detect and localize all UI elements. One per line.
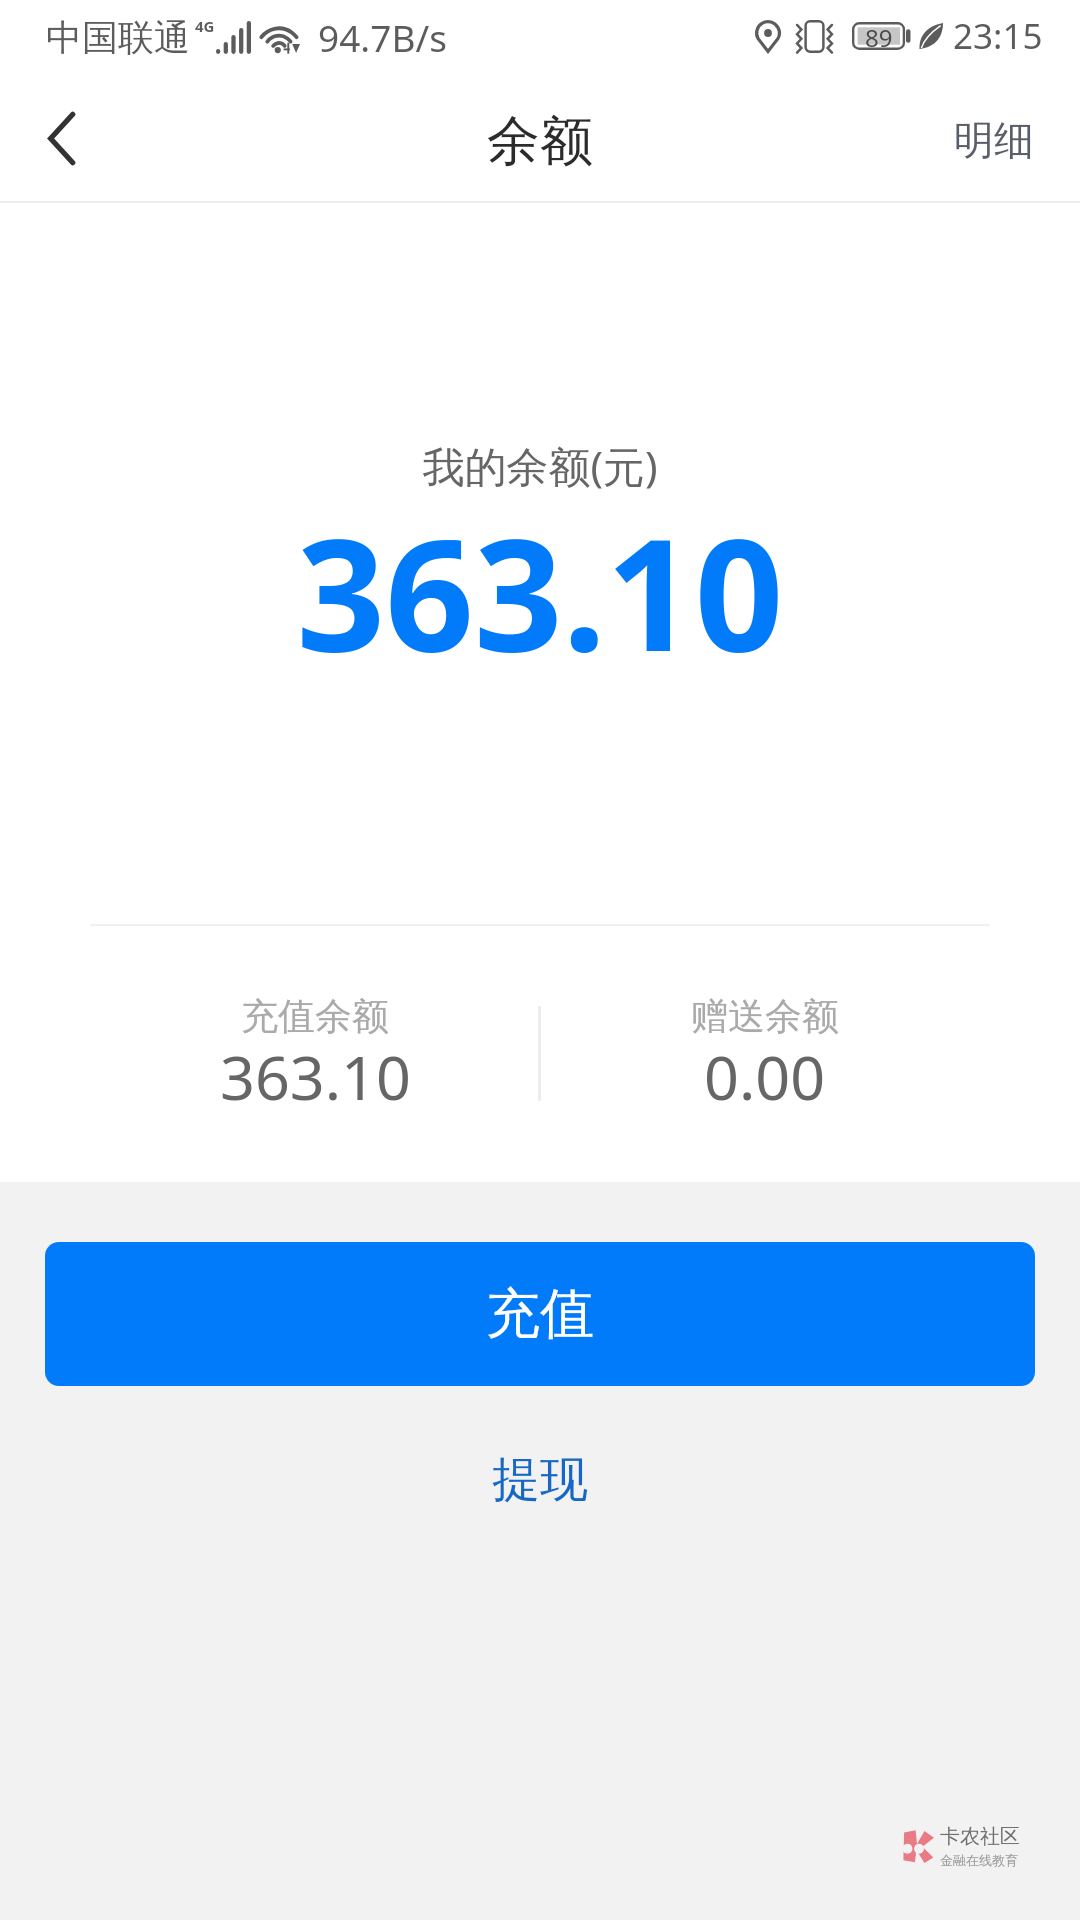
staticText: 23:15: [953, 12, 1043, 60]
button[interactable]: 提现: [400, 1430, 680, 1530]
button[interactable]: 明细: [954, 80, 1034, 203]
staticText: 363.10: [220, 1035, 411, 1118]
staticText: 明细: [954, 115, 1034, 165]
button[interactable]: 充值: [45, 1242, 1035, 1386]
staticText: 0.00: [704, 1035, 826, 1118]
staticText: 4G: [195, 16, 215, 36]
staticText: 363.10: [0, 485, 1080, 696]
staticText: 充值余额: [241, 993, 389, 1040]
staticText: 提现: [492, 1450, 588, 1510]
staticText: 赠送余额: [691, 993, 839, 1040]
staticText: 充值: [486, 1280, 594, 1348]
staticText: 中国联通: [46, 15, 190, 60]
staticText: 89: [865, 21, 893, 49]
staticText: 余额: [487, 108, 593, 175]
staticText: 我的余额(元): [0, 437, 1080, 494]
staticText: 金融在线教育: [940, 1852, 1018, 1868]
button[interactable]: Back: [0, 80, 120, 203]
staticText: 94.7B/s: [318, 12, 447, 62]
staticText: 卡农社区: [940, 1824, 1020, 1849]
